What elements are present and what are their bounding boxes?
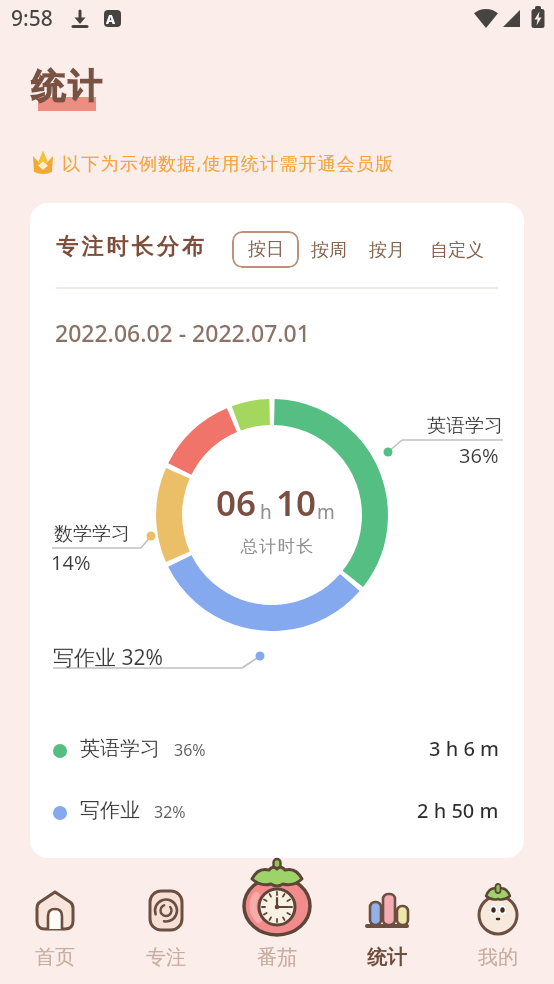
staticText: 数学学习 [54, 522, 130, 546]
button[interactable]: 英语学习 [80, 736, 206, 761]
staticText: 英语学习 [80, 736, 160, 761]
staticText: 统计 [367, 945, 407, 970]
staticText: 专注时长分布 [56, 233, 208, 261]
button[interactable]: 按日 [232, 231, 299, 268]
staticText: A [106, 10, 115, 28]
staticText: h [260, 499, 272, 525]
staticText: 按日 [248, 238, 284, 261]
staticText: 3 h 6 m [429, 735, 499, 762]
staticText: 按周 [311, 239, 347, 262]
staticText: 36% [174, 739, 206, 761]
button[interactable]: 按月 [364, 236, 410, 264]
button[interactable]: 统计 [335, 858, 439, 984]
staticText: 自定义 [430, 239, 484, 262]
staticText: 按月 [369, 239, 405, 262]
staticText: 英语学习 [427, 414, 503, 438]
button[interactable]: 写作业 [80, 798, 186, 823]
staticText: 14% [51, 549, 91, 576]
staticText: 番茄 [257, 945, 297, 970]
staticText: 32% [154, 801, 186, 823]
staticText: 写作业 [80, 798, 140, 823]
staticText: 2 h 50 m [417, 797, 499, 824]
staticText: m [317, 499, 335, 525]
button[interactable]: 我的 [446, 858, 550, 984]
staticText: 统计 [30, 65, 103, 108]
staticText: 总计时长 [240, 536, 314, 557]
staticText: 2022.06.02 - 2022.07.01 [55, 317, 310, 348]
staticText: 首页 [35, 945, 75, 970]
button[interactable]: 专注 [114, 858, 218, 984]
staticText: 以下为示例数据,使用统计需开通会员版 [62, 151, 395, 176]
staticText: 36% [459, 442, 499, 469]
staticText: 9:58 [11, 4, 53, 33]
button[interactable]: 番茄 [225, 858, 329, 984]
staticText: 10 [276, 479, 317, 527]
button[interactable]: 自定义 [426, 236, 488, 264]
staticText: 06 [216, 479, 257, 527]
staticText: 专注 [146, 945, 186, 970]
staticText: 我的 [478, 945, 518, 970]
button[interactable]: 首页 [3, 858, 107, 984]
staticText: 写作业 32% [53, 643, 163, 672]
button[interactable]: 按周 [306, 236, 352, 264]
